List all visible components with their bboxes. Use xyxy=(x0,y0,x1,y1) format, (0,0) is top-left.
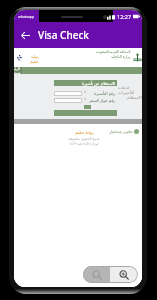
staticText: المملكة العربية السعودية xyxy=(96,49,131,54)
staticText: لوزارة الداخلية ١٤٣٩ xyxy=(69,141,99,146)
staticText: * xyxy=(84,90,87,95)
staticText: * xyxy=(84,97,87,102)
staticText: بوابة xyxy=(31,54,39,59)
staticText: بوابة مقيم xyxy=(75,129,94,135)
staticText: Visa Check xyxy=(38,28,89,42)
staticText: وزارة الداخلية xyxy=(111,54,131,59)
staticText: الرئيسية xyxy=(14,67,22,74)
button[interactable]: Back xyxy=(14,22,36,48)
staticText: whatsapp xyxy=(18,14,35,19)
staticText: مقيم xyxy=(30,59,39,64)
staticText: 12:27 xyxy=(117,13,132,20)
staticText: الاستعلام عن تأشيرة xyxy=(82,81,116,86)
staticText: الاستعلام xyxy=(127,95,142,100)
staticText: تطوير وتشغيل xyxy=(109,129,133,134)
button[interactable]: Zoom out xyxy=(83,266,110,283)
staticText: خدمات التأشيرات xyxy=(118,85,142,95)
staticText: جميع الحقوق محفوظة xyxy=(68,136,100,141)
button[interactable]: Zoom in xyxy=(110,266,138,283)
button[interactable]: الرئيسية xyxy=(14,67,22,74)
staticText: رقم جواز السفر xyxy=(89,98,116,103)
staticText: رقم التأشيرة xyxy=(94,91,116,96)
